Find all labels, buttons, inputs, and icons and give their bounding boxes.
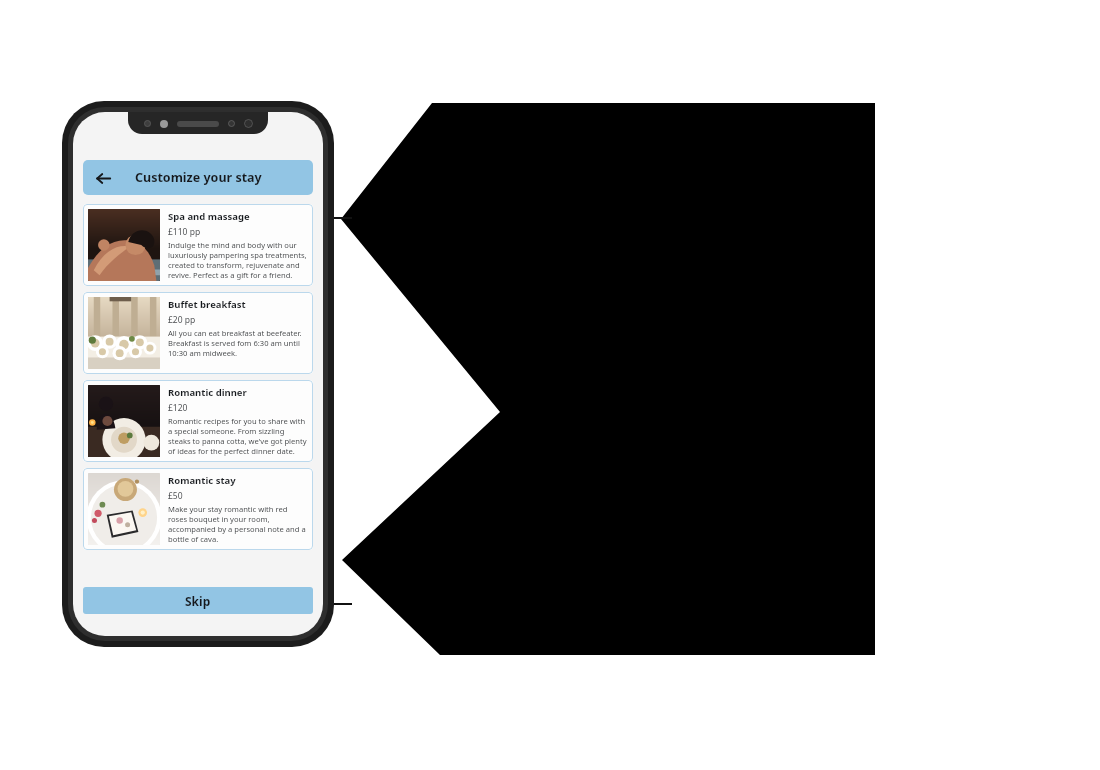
staticText: £50: [168, 490, 183, 502]
staticText: Romantic recipes for you to share with a…: [168, 416, 308, 456]
button[interactable]: Skip: [83, 587, 313, 614]
staticText: Make your stay romantic with red roses b…: [168, 504, 308, 544]
staticText: Customize your stay: [135, 169, 262, 186]
staticText: Romantic dinner: [168, 386, 247, 399]
staticText: Indulge the mind and body with our luxur…: [168, 240, 308, 280]
button[interactable]: Romantic dinner: [83, 380, 313, 462]
staticText: £120: [168, 402, 188, 414]
button[interactable]: Back: [91, 166, 115, 190]
staticText: Skip: [185, 593, 211, 609]
staticText: £110 pp: [168, 226, 201, 238]
button[interactable]: Buffet breakfast: [83, 292, 313, 374]
staticText: Buffet breakfast: [168, 298, 246, 311]
button[interactable]: Spa and massage: [83, 204, 313, 286]
button[interactable]: Back: [83, 160, 313, 195]
staticText: £20 pp: [168, 314, 196, 326]
staticText: Romantic stay: [168, 474, 236, 487]
button[interactable]: Romantic stay: [83, 468, 313, 550]
staticText: Spa and massage: [168, 210, 250, 223]
staticText: All you can eat breakfast at beefeater. …: [168, 328, 308, 358]
